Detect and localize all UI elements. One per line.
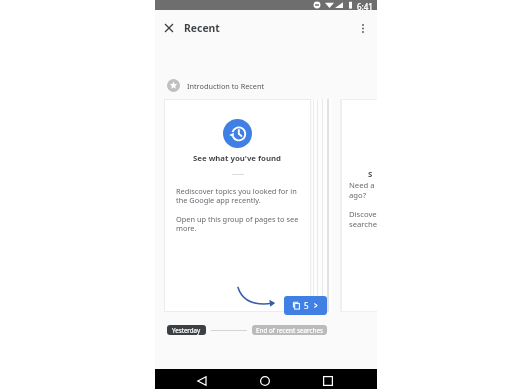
button[interactable]: S bbox=[342, 100, 377, 311]
button[interactable]: Recent apps bbox=[315, 373, 341, 389]
button[interactable]: Back bbox=[189, 373, 215, 389]
button[interactable]: 5 bbox=[284, 296, 327, 315]
staticText: See what you've found bbox=[193, 153, 282, 164]
staticText: 6:41 bbox=[357, 1, 373, 11]
button[interactable]: More options bbox=[352, 17, 374, 39]
button[interactable]: Yesterday bbox=[167, 325, 206, 335]
staticText: Open up this group of pages to see more. bbox=[176, 214, 302, 233]
button[interactable]: End of recent searches bbox=[252, 325, 327, 335]
staticText: Introduction to Recent bbox=[187, 81, 265, 91]
staticText: S bbox=[368, 169, 373, 180]
staticText: searche bbox=[349, 219, 378, 229]
button[interactable]: See what you've found bbox=[165, 100, 310, 311]
staticText: ago? bbox=[349, 190, 367, 200]
staticText: Recent bbox=[184, 21, 220, 35]
staticText: Discove bbox=[349, 209, 377, 219]
staticText: End of recent searches bbox=[256, 326, 323, 335]
button[interactable]: Home bbox=[252, 373, 278, 389]
staticText: Yesterday bbox=[172, 326, 201, 334]
staticText: Need a bbox=[349, 180, 377, 190]
button[interactable]: Close bbox=[158, 17, 180, 39]
staticText: 5 bbox=[304, 300, 309, 311]
staticText: Rediscover topics you looked for in the … bbox=[176, 186, 302, 205]
